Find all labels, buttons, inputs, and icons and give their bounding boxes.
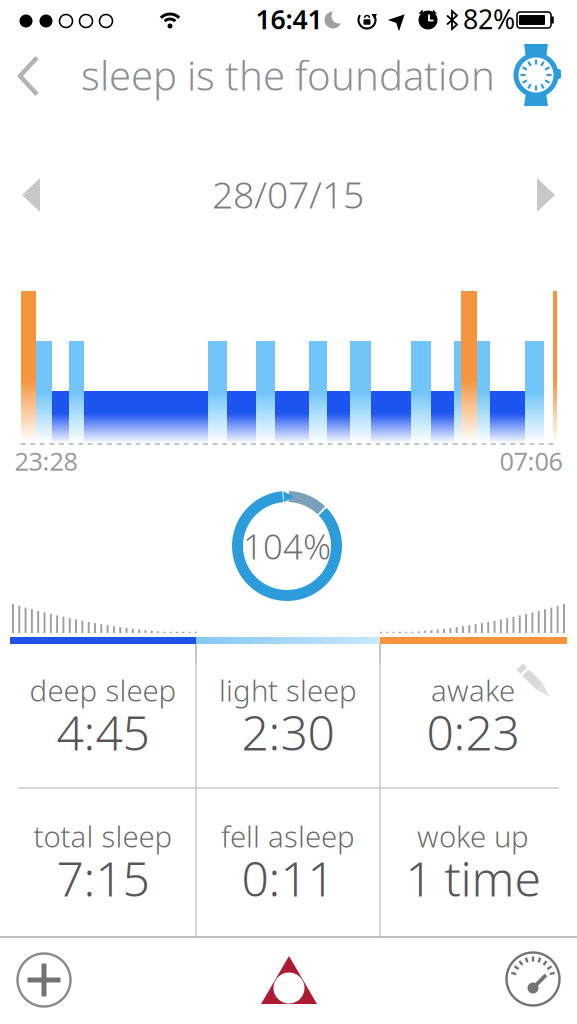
- button[interactable]: Back: [10, 47, 48, 104]
- staticText: woke up: [417, 816, 529, 855]
- staticText: 2:30: [241, 700, 334, 764]
- button[interactable]: Watch: [513, 43, 561, 107]
- button[interactable]: Edit: [513, 660, 555, 702]
- staticText: 4:45: [56, 700, 149, 764]
- button[interactable]: Home: [259, 950, 319, 1010]
- staticText: 7:15: [56, 846, 149, 910]
- button[interactable]: Previous day: [14, 170, 48, 220]
- staticText: light sleep: [219, 670, 357, 709]
- staticText: 1 time: [405, 846, 540, 910]
- staticText: 0:11: [241, 846, 334, 910]
- staticText: 82%: [463, 1, 515, 37]
- button[interactable]: Add: [14, 950, 74, 1010]
- staticText: 104%: [243, 523, 331, 569]
- staticText: 0:23: [426, 700, 519, 764]
- button[interactable]: Statistics: [503, 949, 563, 1009]
- button[interactable]: Next day: [529, 170, 563, 220]
- staticText: sleep is the foundation: [81, 48, 495, 101]
- staticText: 23:28: [14, 444, 77, 478]
- staticText: 16:41: [255, 1, 322, 37]
- staticText: awake: [431, 670, 515, 709]
- staticText: 07:06: [499, 444, 562, 478]
- staticText: total sleep: [33, 816, 172, 855]
- staticText: 28/07/15: [212, 169, 364, 219]
- staticText: fell asleep: [221, 816, 355, 855]
- staticText: deep sleep: [29, 670, 176, 709]
